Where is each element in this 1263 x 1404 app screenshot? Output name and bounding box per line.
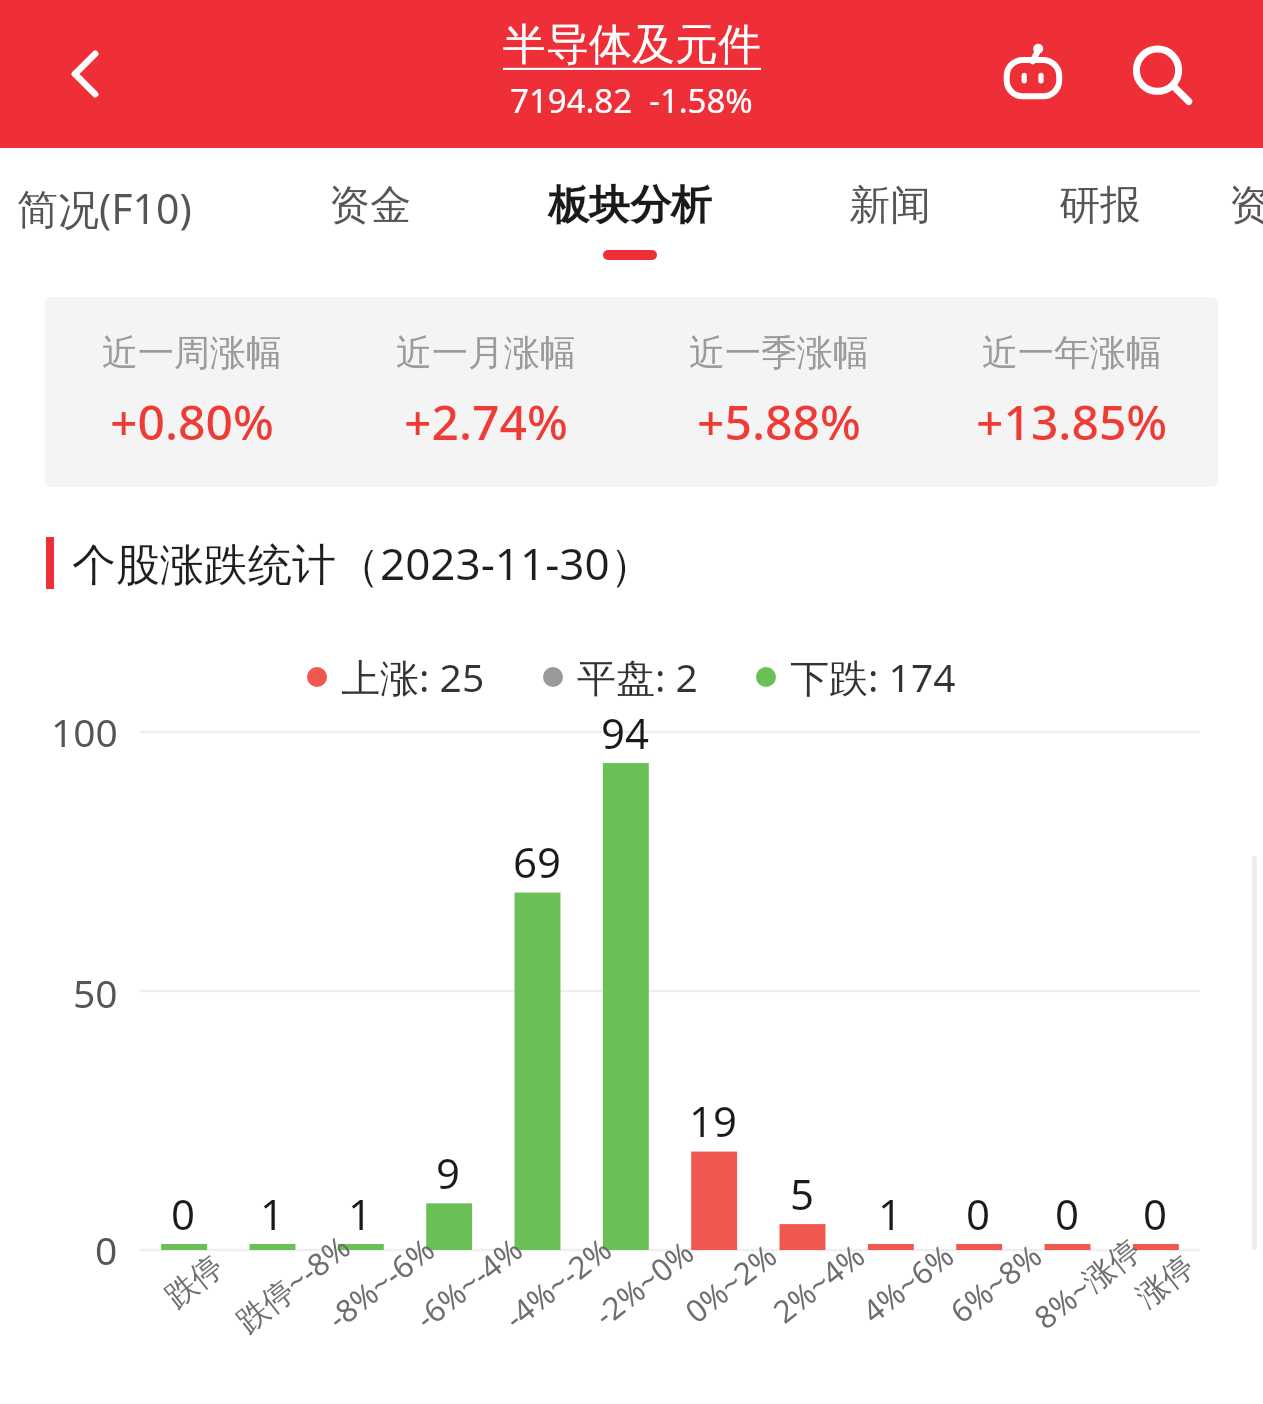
- button[interactable]: 平盘: 2: [543, 650, 698, 703]
- staticText: 9: [436, 1144, 461, 1201]
- staticText: 新闻: [849, 180, 931, 232]
- staticText: 0: [1143, 1185, 1168, 1242]
- staticText: 100: [51, 705, 118, 758]
- staticText: 94: [601, 704, 650, 761]
- staticText: 跌停: [158, 1247, 230, 1316]
- staticText: -8%~-6%: [318, 1228, 443, 1338]
- button[interactable]: 近一周涨幅: [45, 297, 1218, 487]
- staticText: 近一年涨幅: [982, 330, 1162, 375]
- button[interactable]: 新闻: [849, 180, 931, 250]
- staticText: 上涨: 25: [341, 650, 485, 703]
- staticText: +2.74%: [404, 389, 568, 454]
- button[interactable]: 资料: [1229, 180, 1263, 250]
- staticText: 半导体及元件: [503, 18, 761, 72]
- staticText: 2%~4%: [764, 1234, 873, 1332]
- staticText: +0.80%: [110, 389, 274, 454]
- staticText: 1: [348, 1185, 373, 1242]
- staticText: 7194.82 -1.58%: [510, 78, 753, 123]
- staticText: 涨停: [1129, 1247, 1201, 1316]
- staticText: 1: [260, 1185, 285, 1242]
- staticText: 0: [1055, 1185, 1080, 1242]
- staticText: 0: [171, 1185, 196, 1242]
- staticText: 跌停~-8%: [227, 1225, 359, 1341]
- staticText: 下跌: 174: [790, 650, 956, 703]
- staticText: 50: [73, 966, 118, 1019]
- button[interactable]: 资金: [329, 180, 411, 250]
- staticText: 近一周涨幅: [102, 330, 282, 375]
- staticText: 4%~6%: [853, 1234, 962, 1332]
- button[interactable]: 简况(F10): [17, 180, 192, 254]
- staticText: 0: [966, 1185, 991, 1242]
- staticText: 简况(F10): [17, 180, 192, 236]
- staticText: 资料: [1229, 180, 1263, 232]
- staticText: -6%~-4%: [406, 1228, 531, 1338]
- staticText: 1: [878, 1185, 903, 1242]
- staticText: +5.88%: [697, 389, 861, 454]
- staticText: -4%~-2%: [495, 1228, 620, 1338]
- button[interactable]: 研报: [1059, 180, 1141, 250]
- button[interactable]: Search: [1118, 32, 1206, 120]
- staticText: 0%~2%: [676, 1234, 785, 1332]
- staticText: 69: [513, 833, 562, 890]
- staticText: 板块分析: [548, 180, 712, 232]
- staticText: 平盘: 2: [577, 650, 698, 703]
- staticText: 资金: [329, 180, 411, 232]
- button[interactable]: 下跌: 174: [756, 650, 956, 703]
- staticText: -2%~0%: [585, 1231, 702, 1335]
- button[interactable]: 板块分析: [548, 180, 712, 260]
- staticText: 近一月涨幅: [396, 330, 576, 375]
- staticText: 8%~涨停: [1025, 1228, 1149, 1338]
- staticText: 个股涨跌统计（2023-11-30）: [72, 533, 654, 593]
- button[interactable]: AI assistant: [990, 32, 1078, 120]
- button[interactable]: Back: [46, 34, 126, 114]
- staticText: 近一季涨幅: [689, 330, 869, 375]
- staticText: 研报: [1059, 180, 1141, 232]
- staticText: +13.85%: [976, 389, 1168, 454]
- staticText: 5: [790, 1165, 815, 1222]
- staticText: 0: [95, 1223, 118, 1276]
- staticText: 19: [689, 1092, 738, 1149]
- staticText: 6%~8%: [941, 1234, 1050, 1332]
- button[interactable]: 上涨: 25: [307, 650, 485, 703]
